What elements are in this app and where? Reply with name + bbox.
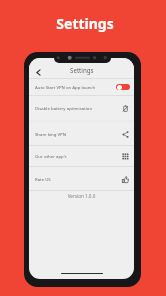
button[interactable]: Share king VPN bbox=[29, 123, 134, 145]
button[interactable]: Our other app's bbox=[29, 146, 134, 166]
button[interactable]: Rate us bbox=[120, 174, 130, 184]
staticText: Auto Start VPN on App launch bbox=[35, 84, 96, 90]
staticText: Settings bbox=[70, 66, 94, 74]
staticText: Rate US bbox=[35, 176, 51, 182]
button[interactable]: Disable battery optimisation bbox=[29, 96, 134, 120]
button[interactable]: Share bbox=[120, 129, 130, 139]
button[interactable]: Auto start toggle bbox=[116, 84, 130, 90]
button[interactable]: Rate US bbox=[29, 167, 134, 190]
button[interactable]: Our other apps bbox=[120, 151, 130, 161]
staticText: Settings bbox=[2, 14, 166, 33]
staticText: Our other app's bbox=[35, 153, 67, 159]
staticText: Share king VPN bbox=[35, 131, 66, 137]
button[interactable]: Auto Start VPN on App launch bbox=[29, 79, 134, 95]
button[interactable]: Back bbox=[32, 66, 45, 79]
staticText: Disable battery optimisation bbox=[35, 105, 93, 111]
staticText: Version 1.0.0 bbox=[29, 193, 134, 199]
button[interactable]: Battery optimisation bbox=[120, 103, 130, 113]
